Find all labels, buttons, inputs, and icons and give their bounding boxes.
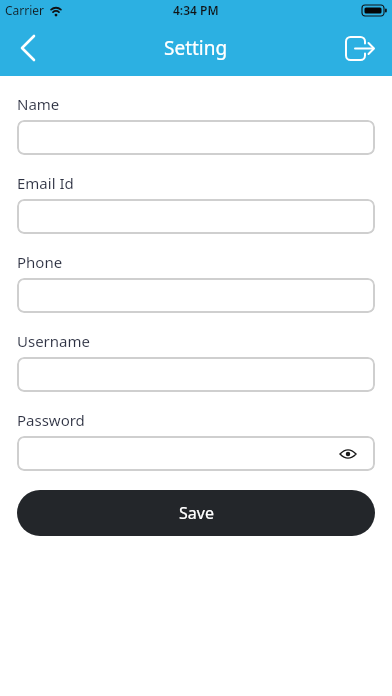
staticText: Email Id (17, 173, 74, 191)
staticText: Setting (164, 35, 228, 61)
staticText: Name (17, 94, 60, 112)
button[interactable] (17, 278, 375, 313)
staticText: Carrier (5, 2, 45, 18)
staticText: Username (17, 331, 90, 349)
staticText: Phone (17, 252, 63, 270)
staticText: Password (17, 410, 85, 428)
staticText: Save (179, 502, 214, 524)
staticText: 4:34 PM (173, 2, 219, 18)
button[interactable] (17, 199, 375, 234)
button[interactable]: Save (17, 490, 375, 536)
button[interactable] (17, 436, 375, 471)
button[interactable] (17, 120, 375, 155)
button[interactable] (17, 33, 47, 63)
button[interactable] (17, 357, 375, 392)
button[interactable] (345, 33, 375, 63)
